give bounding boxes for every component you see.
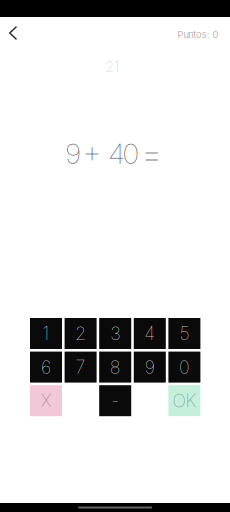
staticText: 9 — [65, 137, 80, 170]
staticText: 1 — [42, 323, 49, 344]
staticText: Puntos: 0 — [178, 29, 218, 40]
staticText: OK — [172, 390, 196, 412]
button[interactable]: 3 — [99, 318, 131, 349]
staticText: 2 — [75, 323, 86, 344]
button[interactable]: 5 — [168, 318, 200, 349]
staticText: + — [83, 133, 102, 170]
button[interactable]: 9 — [134, 352, 166, 383]
staticText: - — [111, 390, 119, 412]
staticText: X — [41, 391, 51, 411]
staticText: 7 — [76, 356, 86, 378]
staticText: 5 — [179, 323, 189, 344]
staticText: 9 — [145, 356, 155, 378]
button[interactable]: 0 — [168, 352, 200, 383]
button[interactable]: - — [99, 385, 131, 416]
button[interactable]: X — [30, 385, 62, 416]
staticText: 21 — [105, 57, 120, 76]
staticText: 0 — [123, 137, 139, 170]
button[interactable]: 8 — [99, 352, 131, 383]
staticText: 0 — [179, 356, 190, 378]
staticText: 4 — [144, 323, 155, 344]
button[interactable]: Back — [0, 16, 26, 50]
staticText: 3 — [110, 323, 120, 344]
button[interactable]: 1 — [30, 318, 62, 349]
staticText: 4 — [108, 137, 124, 170]
staticText: 8 — [110, 356, 121, 378]
staticText: = — [141, 132, 162, 175]
staticText: 6 — [41, 356, 51, 378]
button[interactable]: 7 — [65, 352, 97, 383]
button[interactable]: OK — [168, 385, 200, 416]
button[interactable]: 4 — [134, 318, 166, 349]
button[interactable]: 6 — [30, 352, 62, 383]
button[interactable]: 2 — [65, 318, 97, 349]
